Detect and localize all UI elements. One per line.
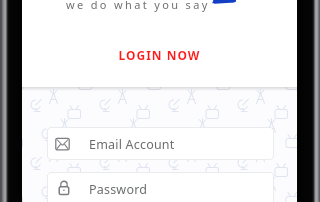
staticText: Password [89,181,148,198]
button[interactable]: LOGIN NOW [22,47,297,63]
button[interactable]: Email Account [47,127,274,160]
staticText: we do what you say [66,0,210,12]
button[interactable]: Password [47,172,274,202]
staticText: Email Account [89,136,175,153]
